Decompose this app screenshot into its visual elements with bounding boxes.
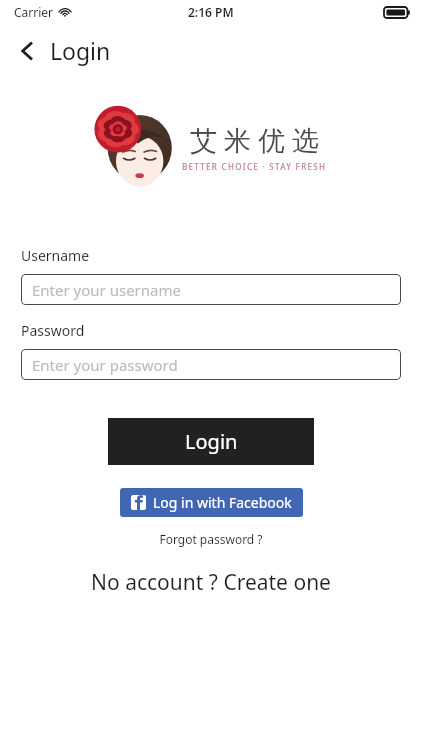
staticText: Forgot password ? [159,531,263,547]
staticText: Password [21,321,85,340]
staticText: BETTER CHOICE · STAY FRESH [182,161,327,172]
button[interactable]: Forgot password ? [149,528,273,550]
button[interactable]: Back [10,29,119,72]
staticText: Enter your username [32,280,181,300]
staticText: Carrier [14,4,54,20]
staticText: 艾 米 优 选 [190,121,320,158]
staticText: Login [50,35,111,66]
staticText: Enter your password [32,355,178,375]
staticText: 2:16 PM [188,4,234,20]
button[interactable]: Login [108,418,314,465]
button[interactable]: Enter your username [21,274,401,305]
other: Back [18,40,36,62]
staticText: Log in with Facebook [153,493,292,512]
button[interactable]: No account ? Create one [79,564,343,601]
button[interactable]: Enter your password [21,349,401,380]
button[interactable]: Log in with Facebook [120,488,303,517]
staticText: Username [21,246,90,265]
staticText: No account ? Create one [91,568,331,597]
staticText: Login [185,428,238,455]
